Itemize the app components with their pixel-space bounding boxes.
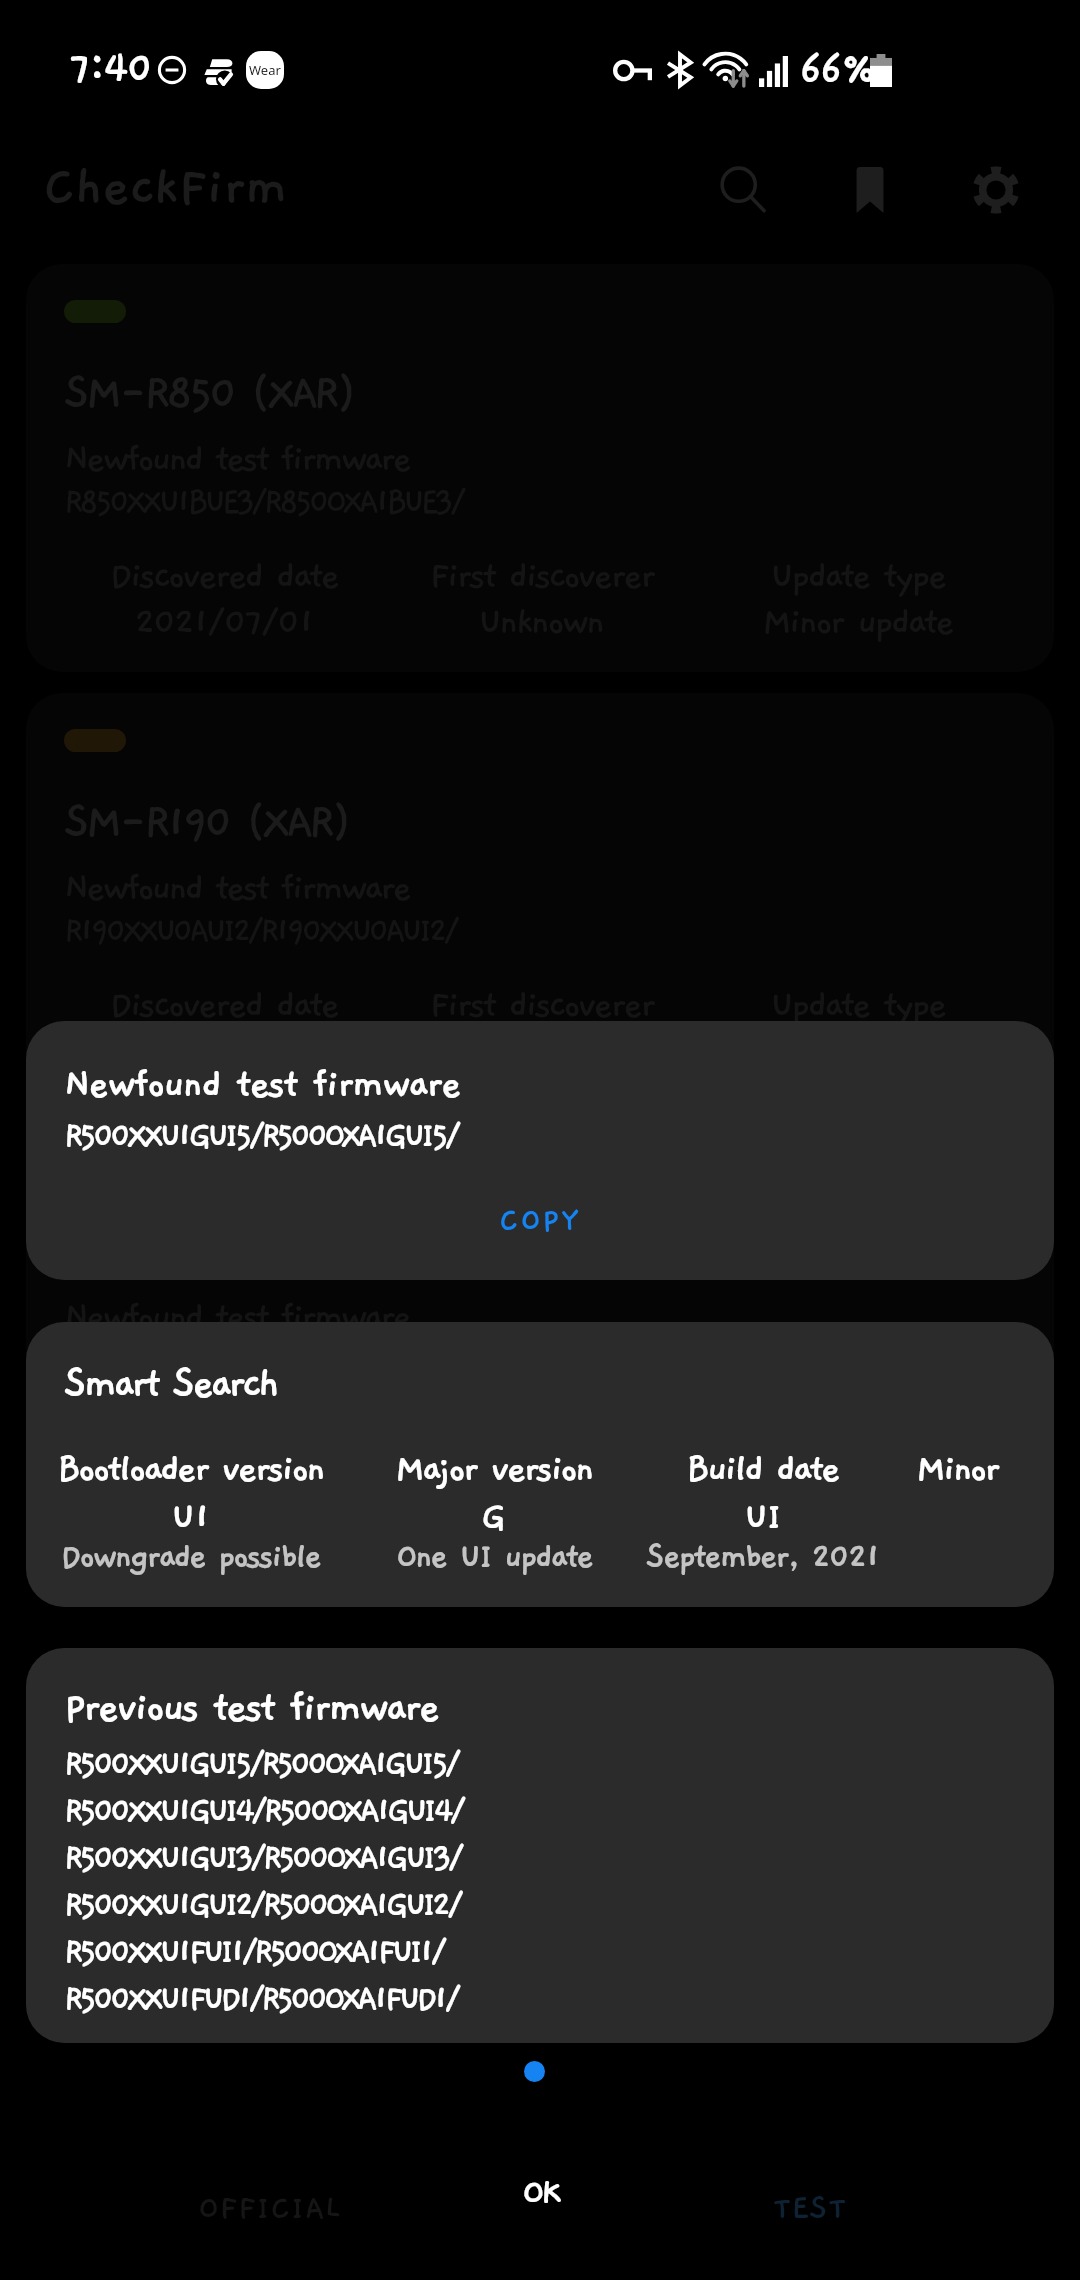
staticText: Unknown bbox=[478, 1459, 603, 1501]
staticText: September, 2021 bbox=[646, 1538, 879, 1576]
staticText: Wear bbox=[249, 61, 281, 79]
staticText: Newfound test firmware bbox=[64, 1063, 460, 1107]
staticText: Minor update bbox=[762, 1459, 953, 1501]
staticText: R500XXU1GUI3/R500OXA1GUI3/ bbox=[64, 1839, 461, 1877]
staticText: 7:40 bbox=[69, 45, 151, 93]
button[interactable]: OK bbox=[462, 2155, 619, 2231]
staticText: R500XXU1GUI4/R500OXA1GUI4/ bbox=[64, 1792, 463, 1830]
staticText: One UI update bbox=[396, 1538, 592, 1576]
button[interactable]: SM-R190 (XAR) bbox=[26, 693, 1054, 1101]
staticText: 2021/06/25 bbox=[133, 1030, 313, 1072]
staticText: COPY bbox=[499, 1203, 581, 1239]
staticText: TEST bbox=[773, 2190, 847, 2227]
staticText: R500XXU1GUI5/R500OXA1GUI5/ bbox=[64, 1745, 458, 1783]
staticText: Build date bbox=[686, 1448, 839, 1490]
staticText: Newfound test firmware bbox=[64, 867, 409, 909]
staticText: First discoverer bbox=[429, 984, 653, 1026]
staticText: R500XXU1GUI5/R500OXA1GUI5/ bbox=[64, 1341, 458, 1379]
staticText: G bbox=[481, 1496, 506, 1538]
staticText: SM-R190 (XAR) bbox=[64, 796, 348, 848]
staticText: OFFICIAL bbox=[198, 2190, 342, 2227]
staticText: Discovered date bbox=[109, 984, 338, 1026]
staticText: Bootloader version bbox=[57, 1448, 324, 1490]
staticText: Minor bbox=[916, 1448, 998, 1490]
button[interactable]: SM-R850 (XAR) bbox=[26, 264, 1054, 672]
button[interactable]: COPY bbox=[26, 1184, 1054, 1258]
staticText: Previous test firmware bbox=[64, 1685, 438, 1731]
staticText: R500XXU1FUD1/R500OXA1FUD1/ bbox=[64, 1980, 458, 2018]
staticText: CheckFirm bbox=[43, 157, 287, 217]
staticText: R500XXU1GUI5/R500OXA1GUI5/ bbox=[64, 1117, 458, 1155]
staticText: 2021/07/01 bbox=[134, 601, 313, 643]
button[interactable]: Search bbox=[693, 139, 794, 240]
staticText: Update type bbox=[770, 555, 945, 597]
staticText: SM-R850 (XAR) bbox=[64, 367, 353, 419]
staticText: Unknown bbox=[478, 601, 603, 643]
staticText: R850XXU1BUE3/R850OXA1BUE3/ bbox=[64, 483, 463, 521]
button[interactable]: SM-R500 (XAR) bbox=[26, 1122, 1054, 1530]
staticText: 2021/09/28 bbox=[132, 1459, 315, 1501]
staticText: R500XXU1GUI2/R500OXA1GUI2/ bbox=[64, 1886, 460, 1924]
button[interactable]: OFFICIAL bbox=[0, 2136, 540, 2280]
staticText: R190XXU0AUI2/R190XXU0AUI2/ bbox=[64, 912, 457, 950]
button[interactable]: Settings bbox=[945, 139, 1046, 240]
staticText: First discoverer bbox=[429, 555, 653, 597]
staticText: OK bbox=[522, 2173, 559, 2213]
staticText: Major version bbox=[395, 1448, 592, 1490]
staticText: Discovered date bbox=[109, 555, 338, 597]
staticText: U1 bbox=[171, 1496, 210, 1538]
staticText: R500XXU1FUI1/R500OXA1FUI1/ bbox=[64, 1933, 444, 1971]
staticText: 66% bbox=[799, 46, 875, 95]
staticText: Minor update bbox=[762, 601, 953, 643]
staticText: Update type bbox=[770, 984, 945, 1026]
staticText: UI bbox=[744, 1496, 781, 1538]
button[interactable]: Bookmarks bbox=[819, 139, 920, 240]
button[interactable]: TEST bbox=[540, 2136, 1080, 2280]
staticText: Downgrade possible bbox=[60, 1538, 320, 1576]
staticText: Newfound test firmware bbox=[64, 438, 409, 480]
staticText: Smart Search bbox=[64, 1361, 277, 1407]
staticText: Newfound test firmware bbox=[64, 1296, 409, 1338]
